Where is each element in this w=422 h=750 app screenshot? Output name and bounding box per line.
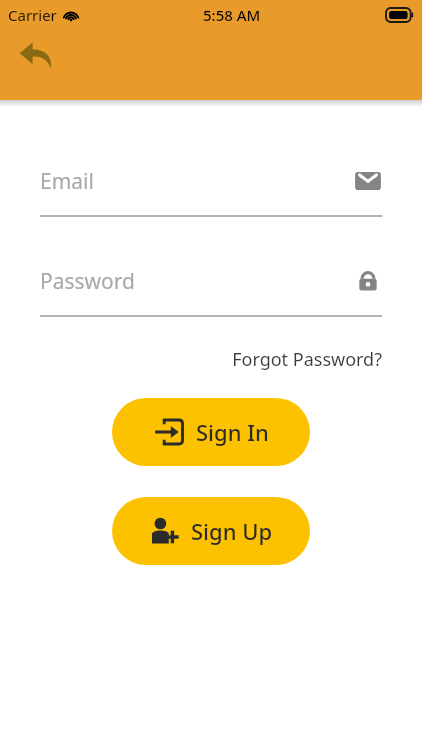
staticText: Password — [40, 267, 135, 296]
button[interactable]: Sign Up — [112, 497, 310, 565]
button[interactable]: Back — [12, 32, 60, 80]
staticText: Sign Up — [191, 516, 273, 546]
staticText: Email — [40, 167, 94, 196]
staticText: Sign In — [196, 417, 269, 447]
button[interactable]: Password — [40, 259, 382, 317]
staticText: 5:58 AM — [203, 5, 261, 25]
button[interactable]: Sign In — [112, 398, 310, 466]
staticText: Carrier — [8, 5, 57, 25]
button[interactable]: Email — [40, 159, 382, 217]
staticText: Forgot Password? — [232, 347, 382, 372]
button[interactable]: Forgot Password? — [40, 347, 382, 372]
